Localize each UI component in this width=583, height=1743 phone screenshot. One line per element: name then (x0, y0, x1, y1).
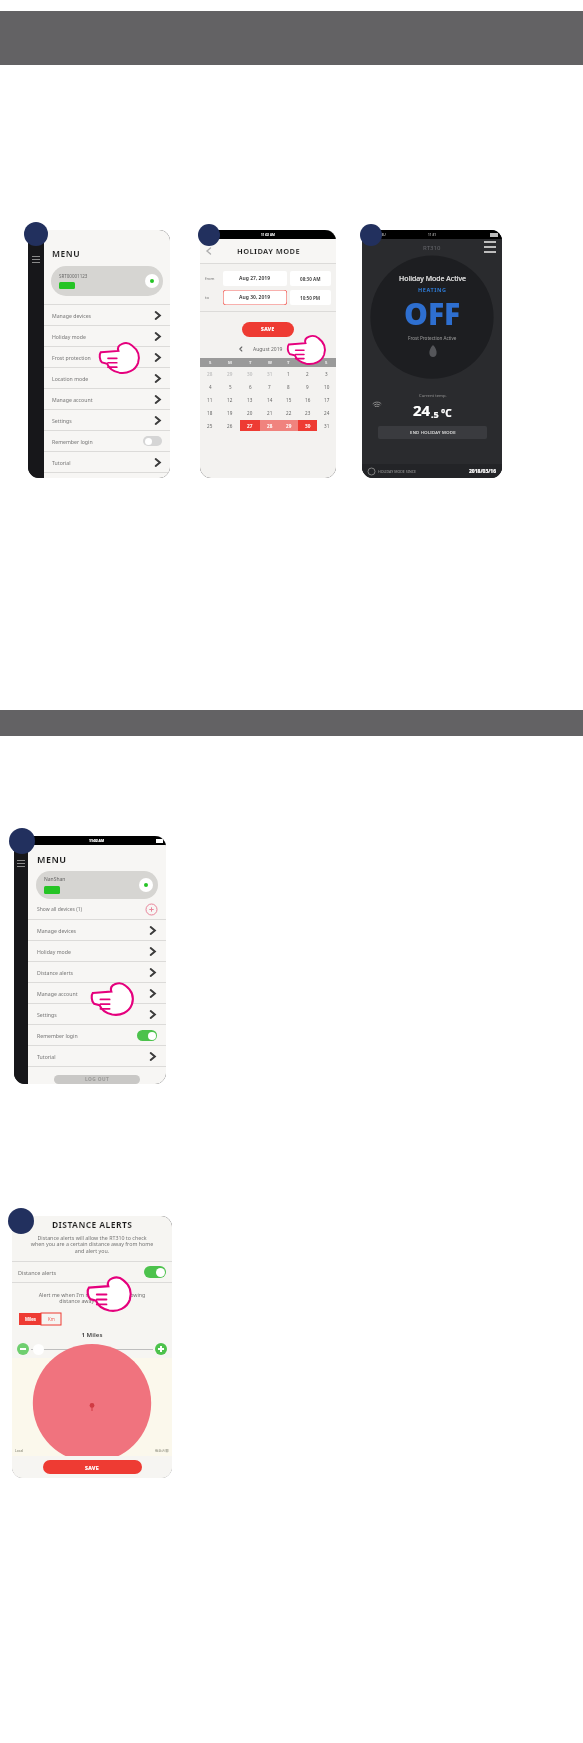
staticText: 3 (325, 371, 328, 377)
button[interactable]: 31 (317, 419, 336, 432)
button[interactable]: 19 (220, 406, 240, 419)
button[interactable]: 18 (200, 406, 220, 419)
button[interactable]: 28 (200, 367, 220, 380)
button[interactable]: Holiday mode (44, 326, 170, 346)
button[interactable]: END HOLIDAY MODE (378, 426, 487, 439)
button[interactable]: 21 (260, 406, 279, 419)
button[interactable]: 16 (298, 393, 317, 406)
staticText: W (268, 360, 272, 366)
button[interactable]: NanShan (36, 871, 158, 899)
button[interactable]: Km (41, 1313, 61, 1325)
staticText: 1 (287, 371, 290, 377)
button[interactable]: 14 (260, 393, 279, 406)
staticText: Miles (25, 1316, 36, 1322)
staticText: Manage account (52, 396, 93, 403)
button[interactable]: Distance slider (33, 1344, 44, 1355)
button[interactable]: 2 (298, 367, 317, 380)
button[interactable]: 9 (298, 380, 317, 393)
staticText: END HOLIDAY MODE (410, 430, 456, 436)
button[interactable]: Toggle (143, 436, 162, 446)
button[interactable]: Next month (291, 345, 299, 353)
staticText: 15 (286, 397, 292, 403)
staticText: Holiday mode (52, 333, 86, 340)
button[interactable]: SAVE (43, 1460, 142, 1474)
button[interactable]: 5 (220, 380, 240, 393)
button[interactable]: 4 (200, 380, 220, 393)
button[interactable]: 8 (279, 380, 298, 393)
staticText: 30 (247, 371, 253, 377)
button[interactable]: Manage devices (28, 920, 166, 940)
button[interactable]: Toggle (137, 1030, 157, 1041)
button[interactable]: 10 (317, 380, 336, 393)
button[interactable]: Distance alerts (12, 1262, 172, 1282)
button[interactable]: 25 (200, 419, 220, 432)
button[interactable]: 15 (279, 393, 298, 406)
button[interactable]: Toggle (144, 1266, 166, 1278)
button[interactable]: Increase (155, 1343, 167, 1355)
staticText: 9 (306, 384, 309, 390)
button[interactable]: 20 (240, 406, 260, 419)
button[interactable]: Frost protection (44, 347, 170, 367)
staticText: Manage devices (52, 312, 92, 319)
button[interactable]: 30 (240, 367, 260, 380)
button[interactable]: Manage devices (44, 305, 170, 325)
button[interactable]: SRT00001123 (51, 266, 163, 296)
button[interactable]: Location mode (44, 368, 170, 388)
button[interactable]: SAVE (242, 322, 294, 337)
button[interactable]: Settings (44, 410, 170, 430)
button[interactable]: Remember login (28, 1025, 166, 1045)
staticText: Tutorial (52, 459, 71, 466)
button[interactable]: 29 (279, 419, 298, 432)
staticText: HEATING (418, 286, 447, 293)
staticText: August 2019 (253, 346, 283, 353)
button[interactable]: Settings (28, 1004, 166, 1024)
button[interactable]: 08:30 AM (290, 271, 331, 286)
button[interactable]: Holiday mode (28, 941, 166, 961)
button[interactable]: 17 (317, 393, 336, 406)
staticText: 24 (413, 400, 431, 420)
button[interactable]: Remember login (44, 431, 170, 451)
button[interactable]: 24 (317, 406, 336, 419)
button[interactable]: 23 (298, 406, 317, 419)
button[interactable]: Manage account (28, 983, 166, 1003)
button[interactable]: 26 (220, 419, 240, 432)
button[interactable]: 6 (240, 380, 260, 393)
staticText: Manage devices (37, 927, 77, 934)
button[interactable]: 1 (279, 367, 298, 380)
button[interactable]: Miles (19, 1313, 41, 1325)
button[interactable]: Previous month (237, 345, 245, 353)
button[interactable]: Distance alerts (28, 962, 166, 982)
button[interactable]: 28 (260, 419, 279, 432)
button[interactable]: 13 (240, 393, 260, 406)
button[interactable]: Aug 30, 2019 (223, 290, 287, 305)
staticText: 條款方圖 (155, 1449, 169, 1453)
button[interactable]: 11 (200, 393, 220, 406)
staticText: OFF (404, 293, 461, 334)
button[interactable]: 10:50 PM (290, 290, 331, 305)
staticText: Local (15, 1448, 24, 1453)
button[interactable]: 31 (260, 367, 279, 380)
staticText: Distance alerts will allow the RT310 to … (16, 1234, 168, 1255)
staticText: T (249, 360, 252, 366)
button[interactable]: Manage account (44, 389, 170, 409)
button[interactable]: Tutorial (28, 1046, 166, 1066)
button[interactable]: 12 (220, 393, 240, 406)
button[interactable]: 27 (240, 419, 260, 432)
button[interactable]: 3 (317, 367, 336, 380)
button[interactable]: 30 (298, 419, 317, 432)
staticText: Alert me when I'm more than the followin… (12, 1291, 172, 1305)
staticText: 5 (229, 384, 232, 390)
button[interactable]: LOG OUT (54, 1075, 140, 1084)
staticText: °C (441, 406, 452, 420)
button[interactable]: 22 (279, 406, 298, 419)
button[interactable]: Decrease (17, 1343, 29, 1355)
button[interactable]: 29 (220, 367, 240, 380)
button[interactable]: Show all devices (1) (28, 899, 166, 919)
button[interactable]: 7 (260, 380, 279, 393)
button[interactable]: Back (204, 246, 214, 256)
staticText: 4 (209, 384, 212, 390)
button[interactable]: Tutorial (44, 452, 170, 472)
staticText: 11:31 (428, 233, 437, 237)
button[interactable]: Aug 27, 2019 (223, 271, 287, 286)
